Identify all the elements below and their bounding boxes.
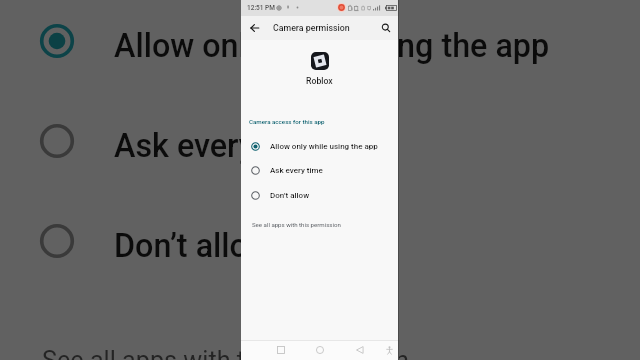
staticText: Don’t allow <box>114 227 272 265</box>
staticText: Roblox <box>306 76 333 86</box>
staticText: Ask every time <box>270 166 323 175</box>
staticText: Allow only while using the app <box>270 142 378 151</box>
button[interactable]: Search <box>377 19 395 37</box>
staticText: See all apps with this permission <box>252 221 341 228</box>
button[interactable]: See all apps with this permission <box>241 217 398 231</box>
staticText: 12:51 PM <box>247 4 275 12</box>
button[interactable]: Don’t allow <box>241 184 398 207</box>
staticText: Ask every time <box>114 127 328 165</box>
button[interactable]: Back <box>353 343 367 357</box>
staticText: Camera permission <box>273 23 350 33</box>
button[interactable]: Accessibility <box>382 343 396 357</box>
staticText: Don’t allow <box>270 191 310 200</box>
button[interactable]: Recents <box>274 343 288 357</box>
button[interactable]: Back <box>246 19 264 37</box>
button[interactable]: Home <box>313 343 327 357</box>
button[interactable]: Ask every time <box>241 159 398 182</box>
button[interactable]: Allow only while using the app <box>241 135 398 158</box>
staticText: Camera access for this app <box>249 118 325 125</box>
staticText: Allow only while using the app <box>114 27 550 65</box>
staticText: See all apps with this permission <box>42 346 409 360</box>
